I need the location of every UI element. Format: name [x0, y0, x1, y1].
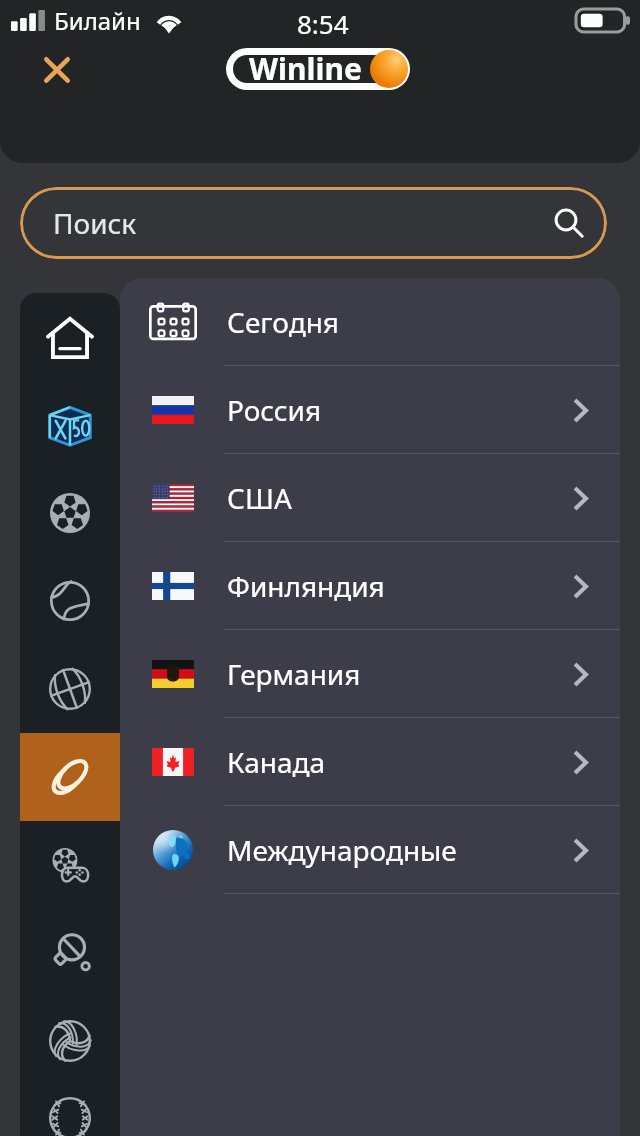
button[interactable]: tennis	[20, 557, 120, 645]
button[interactable]: Поиск	[20, 187, 607, 259]
button[interactable]: basket	[20, 645, 120, 733]
staticText: 8:54	[297, 6, 349, 41]
button[interactable]: Германия	[120, 630, 620, 718]
button[interactable]: x50	[20, 381, 120, 469]
button[interactable]: esports	[20, 821, 120, 909]
button[interactable]: Россия	[120, 366, 620, 454]
staticText: Поиск	[53, 204, 137, 242]
staticText: Финляндия	[227, 567, 385, 605]
button[interactable]: Сегодня	[120, 278, 620, 366]
button[interactable]: Канада	[120, 718, 620, 806]
button[interactable]: Close	[31, 44, 83, 96]
staticText: Международные	[227, 831, 457, 869]
button[interactable]: Финляндия	[120, 542, 620, 630]
button[interactable]: soccer	[20, 469, 120, 557]
button[interactable]: volley	[20, 997, 120, 1085]
button[interactable]: Winline	[226, 48, 410, 90]
staticText: Сегодня	[227, 303, 340, 341]
staticText: Winline	[249, 48, 362, 89]
staticText: Канада	[227, 743, 326, 781]
staticText: США	[227, 479, 292, 517]
button[interactable]: США	[120, 454, 620, 542]
button[interactable]: home	[20, 293, 120, 381]
button[interactable]: pingpong	[20, 909, 120, 997]
staticText: Билайн	[54, 4, 141, 37]
staticText: Германия	[227, 655, 361, 693]
staticText: Россия	[227, 391, 322, 429]
button[interactable]: hockey	[20, 733, 120, 821]
button[interactable]: Международные	[120, 806, 620, 894]
button[interactable]: baseball	[20, 1085, 120, 1136]
